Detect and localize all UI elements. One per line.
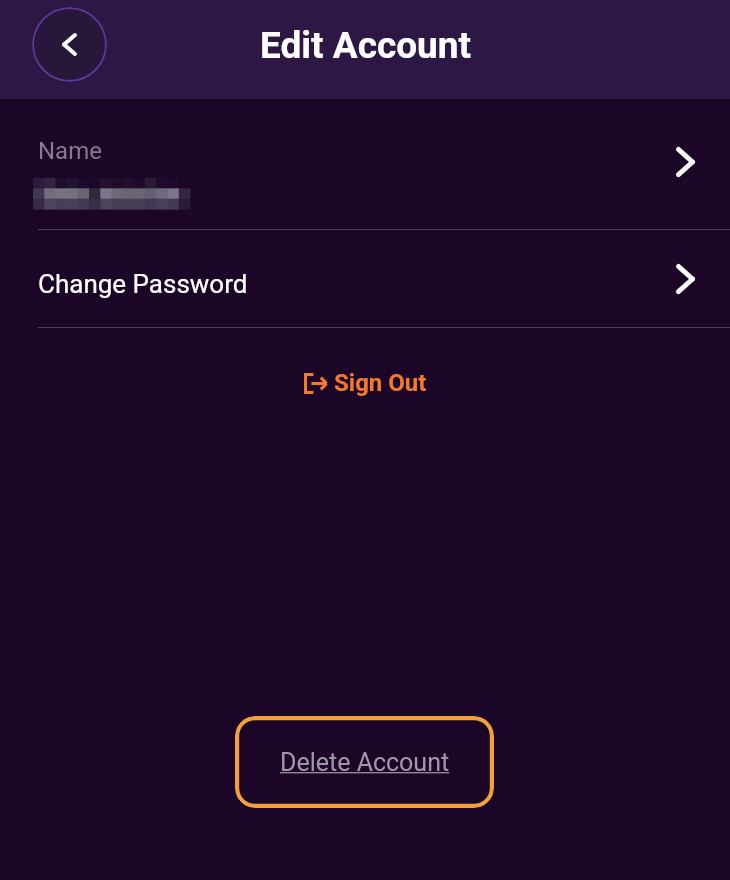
- staticText: Name: [38, 137, 102, 165]
- staticText: Change Password: [38, 269, 730, 299]
- staticText: Edit Account: [260, 24, 472, 67]
- staticText: Delete Account: [280, 748, 450, 777]
- button[interactable]: Back: [32, 7, 107, 82]
- button[interactable]: Delete Account: [235, 716, 494, 808]
- button[interactable]: Name: [0, 99, 730, 229]
- button[interactable]: Sign Out: [298, 365, 433, 401]
- button[interactable]: Change Password: [0, 230, 730, 327]
- staticText: Sign Out: [334, 369, 427, 397]
